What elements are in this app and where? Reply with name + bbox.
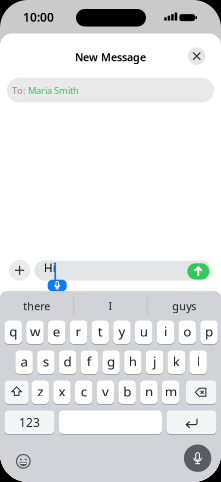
button[interactable]: v (97, 380, 114, 404)
button[interactable]: Dictation (184, 444, 211, 472)
staticText: 10:00 (23, 9, 54, 25)
staticText: Maria Smith (28, 84, 79, 97)
button[interactable]: t (91, 320, 109, 344)
button[interactable]: g (102, 350, 120, 374)
staticText: g (107, 352, 115, 370)
staticText: Hi (44, 260, 56, 276)
staticText: q (9, 322, 17, 340)
button[interactable]: Dictation (48, 280, 67, 291)
button[interactable]: Return (166, 410, 216, 434)
staticText: b (123, 382, 131, 400)
button[interactable]: f (81, 350, 98, 374)
staticText: To: (12, 84, 26, 97)
staticText: i (164, 322, 167, 340)
staticText: I (108, 299, 112, 313)
staticText: v (102, 382, 109, 400)
button[interactable]: e (48, 320, 65, 344)
button[interactable]: Space (59, 410, 162, 434)
button[interactable]: x (53, 380, 71, 404)
button[interactable]: Add attachment (9, 260, 30, 281)
staticText: f (87, 352, 92, 370)
staticText: n (145, 382, 153, 400)
staticText: j (153, 352, 156, 370)
staticText: h (129, 352, 137, 370)
staticText: o (183, 322, 191, 340)
button[interactable]: guys (148, 293, 221, 319)
button[interactable]: a (15, 350, 33, 374)
button[interactable]: Close (188, 47, 205, 65)
button[interactable]: s (37, 350, 55, 374)
staticText: 123 (19, 414, 40, 430)
button[interactable]: h (124, 350, 141, 374)
staticText: m (165, 382, 177, 400)
staticText: a (21, 352, 28, 370)
button[interactable]: d (59, 350, 76, 374)
staticText: l (197, 352, 200, 370)
staticText: d (64, 352, 72, 370)
button[interactable]: u (135, 320, 152, 344)
button[interactable]: Delete (186, 380, 216, 404)
staticText: z (37, 382, 43, 400)
button[interactable]: Emoji (14, 452, 32, 470)
button[interactable]: To: (7, 78, 214, 102)
staticText: New Message (75, 50, 146, 64)
staticText: c (81, 382, 87, 400)
staticText: p (205, 322, 213, 340)
button[interactable]: q (4, 320, 22, 344)
staticText: guys (172, 299, 196, 313)
button[interactable]: i (157, 320, 174, 344)
button[interactable]: I (74, 293, 147, 319)
button[interactable]: n (140, 380, 158, 404)
staticText: e (53, 322, 61, 340)
button[interactable]: Send (187, 263, 209, 279)
button[interactable]: l (189, 350, 207, 374)
staticText: r (75, 322, 81, 340)
button[interactable]: k (168, 350, 185, 374)
staticText: u (140, 322, 148, 340)
button[interactable]: there (0, 293, 73, 319)
staticText: x (58, 382, 65, 400)
button[interactable]: b (118, 380, 136, 404)
staticText: w (30, 322, 40, 340)
button[interactable]: m (162, 380, 179, 404)
staticText: s (43, 352, 49, 370)
button[interactable]: z (31, 380, 49, 404)
staticText: k (173, 352, 180, 370)
button[interactable]: 123 (4, 410, 54, 434)
button[interactable]: p (200, 320, 218, 344)
button[interactable]: w (26, 320, 44, 344)
button[interactable]: r (70, 320, 87, 344)
staticText: t (98, 322, 103, 340)
button[interactable]: o (178, 320, 196, 344)
button[interactable]: c (75, 380, 92, 404)
button[interactable]: j (146, 350, 163, 374)
staticText: y (118, 322, 125, 340)
staticText: there (23, 299, 50, 313)
button[interactable]: Shift (4, 380, 29, 404)
button[interactable]: y (113, 320, 131, 344)
